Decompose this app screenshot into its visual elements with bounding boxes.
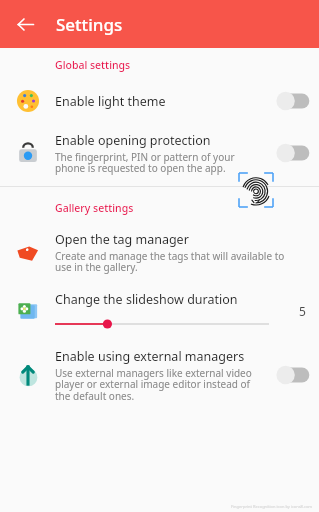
button[interactable]: Open the tag manager: [0, 221, 319, 283]
staticText: Open the tag manager: [55, 231, 189, 248]
button[interactable]: Enable light theme: [0, 78, 319, 124]
staticText: Create and manage the tags that will ava…: [55, 249, 285, 274]
staticText: 5: [299, 303, 306, 319]
staticText: Enable light theme: [55, 93, 166, 110]
staticText: Use external managers like external vide…: [55, 366, 252, 403]
button[interactable]: Toggle: [276, 91, 310, 111]
staticText: Settings: [56, 13, 123, 36]
button[interactable]: Toggle: [276, 365, 310, 385]
button[interactable]: Enable using external managers: [0, 339, 319, 411]
staticText: Enable opening protection: [55, 132, 211, 149]
button[interactable]: Toggle: [276, 143, 310, 163]
staticText: The fingerprint, PIN or pattern of your …: [55, 150, 235, 175]
staticText: Enable using external managers: [55, 348, 245, 365]
button[interactable]: Change the slideshow duration: [0, 283, 319, 339]
staticText: Global settings: [55, 58, 131, 72]
button[interactable]: Back: [8, 7, 42, 41]
staticText: Fingerprint Recognition icon by icons8.c…: [231, 504, 313, 509]
staticText: Gallery settings: [55, 201, 134, 215]
button[interactable]: Enable opening protection: [0, 124, 319, 182]
staticText: Change the slideshow duration: [55, 291, 238, 308]
